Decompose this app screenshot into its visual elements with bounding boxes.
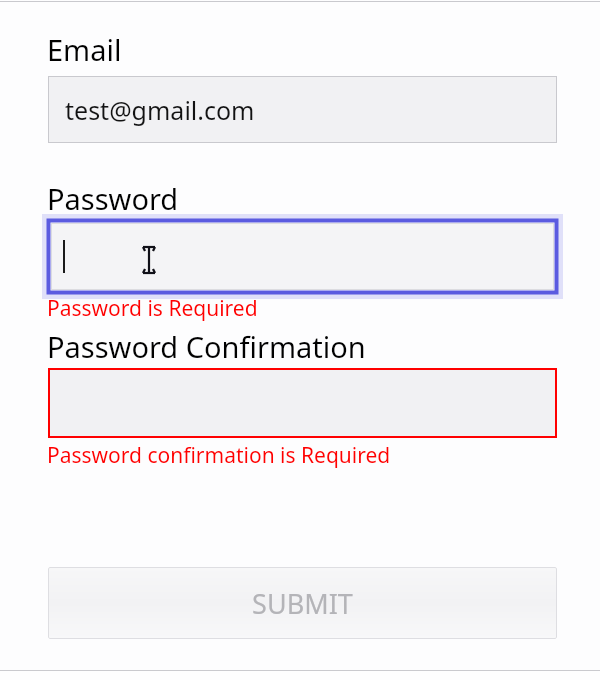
staticText: Password is Required bbox=[47, 294, 258, 323]
staticText: Password bbox=[47, 179, 179, 218]
staticText: Password confirmation is Required bbox=[47, 441, 391, 470]
button[interactable]: SUBMIT bbox=[48, 567, 557, 639]
button[interactable]: Password confirmation input bbox=[48, 368, 557, 438]
staticText: Password Confirmation bbox=[47, 327, 366, 366]
staticText: SUBMIT bbox=[252, 585, 353, 622]
button[interactable]: Password input bbox=[45, 217, 560, 296]
staticText: test@gmail.com bbox=[65, 93, 255, 127]
button[interactable]: test@gmail.com bbox=[48, 76, 557, 143]
staticText: Email bbox=[47, 30, 122, 69]
